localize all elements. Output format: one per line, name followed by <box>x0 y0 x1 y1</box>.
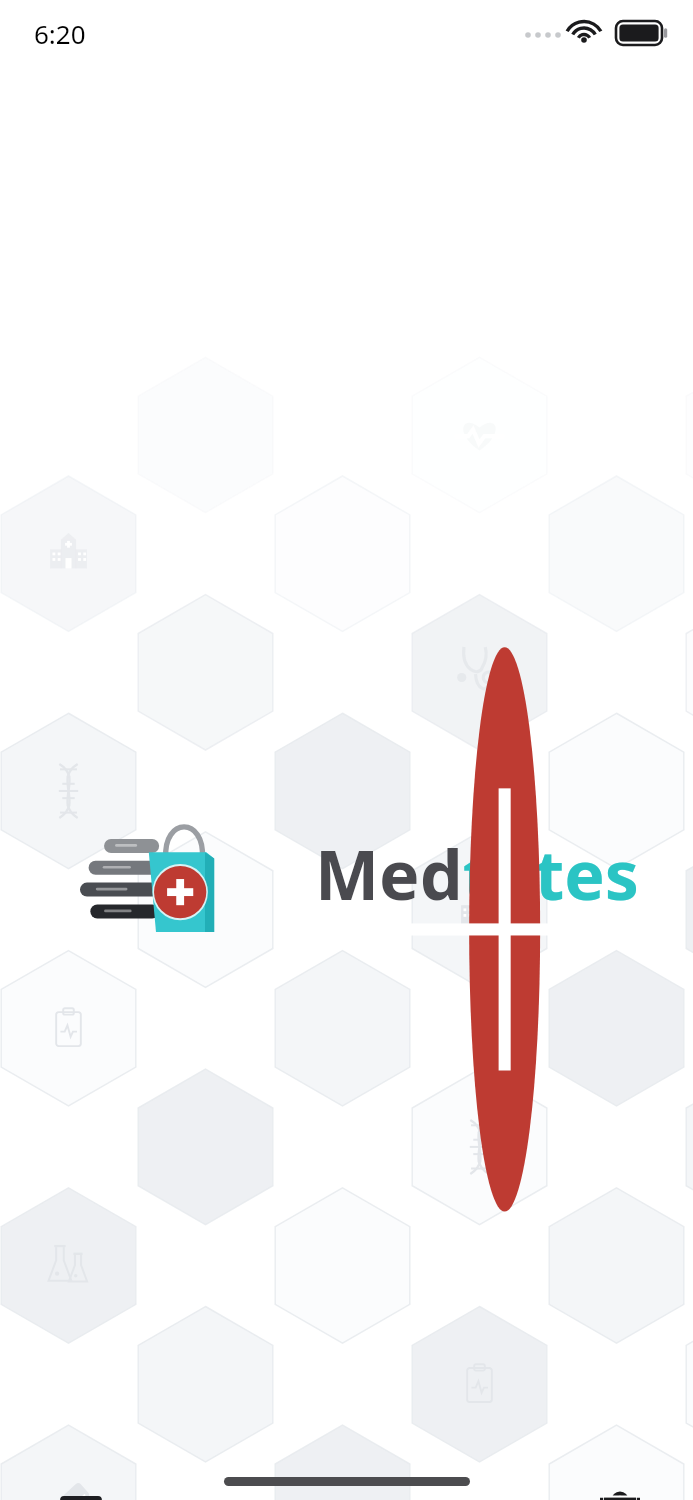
staticText: 6:20 <box>34 16 86 51</box>
staticText: Medtotes <box>315 827 639 920</box>
